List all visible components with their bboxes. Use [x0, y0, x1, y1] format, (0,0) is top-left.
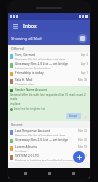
button[interactable]: Recent apps — [66, 168, 80, 179]
button[interactable]: Friendship is today — [8, 70, 90, 77]
button[interactable]: Account — [78, 34, 87, 43]
button[interactable]: Showing all Mail — [8, 32, 90, 45]
staticText: in place — [10, 102, 21, 106]
staticText: Inbox — [23, 23, 37, 30]
button[interactable]: Giveaway files 2.0 List — art bridge — [8, 137, 90, 144]
staticText: Tala H. Mail — [15, 78, 33, 82]
staticText: Offered — [11, 46, 24, 51]
staticText: Giveaway files 2.0 List — art bridge — [15, 62, 69, 66]
button[interactable]: Sender Name Account — [8, 86, 90, 121]
button[interactable]: Open navigation menu — [11, 22, 19, 30]
staticText: Mar 22 — [78, 129, 88, 133]
button[interactable]: Tala H. Mail — [8, 77, 90, 86]
staticText: Mar 20 — [78, 138, 88, 142]
staticText: Mar 12 — [78, 154, 88, 158]
staticText: Sender Name Account — [15, 88, 47, 92]
staticText: Mar 28 — [78, 78, 88, 82]
button[interactable]: Giveaway files 2.0 List — art bridge — [8, 61, 90, 70]
button[interactable]: SYSTEM 2.0 LTD — [8, 153, 90, 162]
staticText: Apr 1 — [81, 71, 88, 75]
staticText: Accept — [69, 114, 78, 118]
staticText: General offer list with line requested l… — [10, 93, 88, 101]
staticText: Beginner file list of brighter and drag — [15, 58, 66, 60]
staticText: Mar 18 — [78, 145, 88, 149]
button[interactable]: Compose new message — [73, 151, 85, 163]
staticText: Item line for brighter list — [14, 107, 45, 111]
button[interactable]: Lorem Albums — [8, 144, 90, 153]
staticText: Last Response Account — [15, 129, 51, 133]
button[interactable]: Accept — [66, 113, 81, 119]
staticText: Friendship is today — [15, 71, 44, 75]
staticText: Apr 4 — [81, 53, 88, 57]
button[interactable]: Last Response Account — [8, 128, 90, 137]
staticText: Beginner file list of brighter and drag — [15, 134, 66, 136]
staticText: Apr 3 — [81, 62, 88, 66]
staticText: Cleaning sites — [15, 83, 34, 85]
staticText: Recent — [11, 122, 23, 127]
button[interactable]: More options — [83, 114, 88, 119]
button[interactable]: Back — [18, 168, 32, 179]
button[interactable]: Home — [42, 168, 56, 179]
staticText: SYSTEM 2.0 LTD — [15, 154, 39, 158]
staticText: Lorem Albums — [15, 145, 38, 149]
button[interactable]: Tom, Gerrard — [8, 52, 90, 61]
staticText: Tom, Gerrard — [15, 53, 36, 57]
staticText: Brighter is brighter mail notified of su… — [15, 159, 74, 161]
staticText: Showing all Mail — [11, 36, 78, 41]
staticText: Lorem ipsum line brighter — [15, 67, 51, 69]
staticText: ⋮ — [84, 115, 87, 118]
staticText: List item — [15, 150, 27, 152]
staticText: Giveaway files 2.0 List — art bridge — [15, 138, 69, 142]
